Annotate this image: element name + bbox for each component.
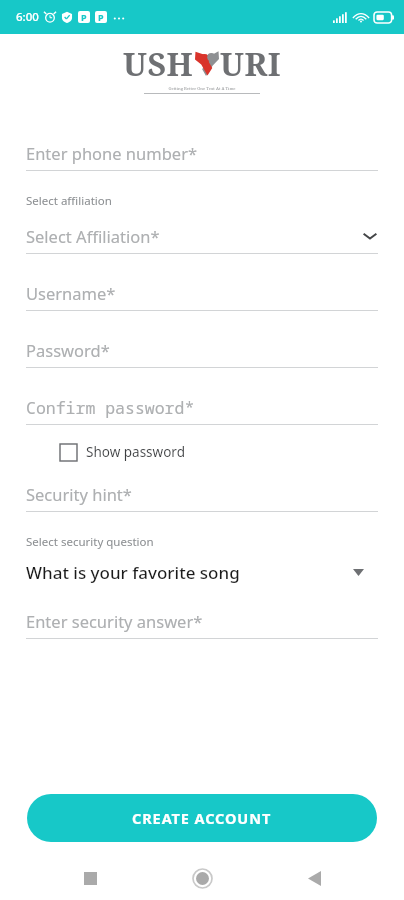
staticText: CREATE ACCOUNT — [132, 808, 272, 828]
button[interactable]: Recents — [68, 856, 112, 900]
button[interactable]: Enter phone number* — [0, 136, 404, 171]
button[interactable]: Home — [180, 856, 224, 900]
button[interactable]: Username* — [0, 276, 404, 311]
staticText: USH — [123, 42, 194, 82]
staticText: URI — [220, 42, 282, 82]
staticText: Select Affiliation* — [26, 225, 160, 247]
button[interactable]: Show password — [58, 437, 187, 467]
staticText: 6:00 — [16, 9, 39, 25]
button[interactable]: Enter security answer* — [0, 604, 404, 639]
button[interactable]: Select Affiliation* — [0, 219, 404, 254]
staticText: Enter security answer* — [26, 610, 203, 632]
other: Select affiliation dropdown — [362, 231, 378, 241]
staticText: Show password — [86, 443, 185, 461]
other: Select security question dropdown — [353, 569, 364, 576]
staticText: Security hint* — [26, 483, 132, 505]
staticText: Select security question — [26, 534, 154, 550]
button[interactable]: Back — [292, 856, 336, 900]
staticText: Enter phone number* — [26, 142, 198, 164]
staticText: Select affiliation — [26, 193, 112, 209]
staticText: Username* — [26, 282, 116, 304]
button[interactable]: What is your favorite song — [0, 554, 404, 590]
staticText: P — [81, 11, 87, 23]
button[interactable]: Password* — [0, 333, 404, 368]
button[interactable]: Security hint* — [0, 477, 404, 512]
staticText: Getting Better One Text At A Time — [168, 86, 236, 92]
staticText: Password* — [26, 339, 110, 361]
button[interactable]: CREATE ACCOUNT — [27, 794, 377, 842]
staticText: What is your favorite song — [26, 561, 240, 584]
staticText: P — [98, 11, 104, 23]
staticText: Confirm password* — [26, 396, 195, 418]
button[interactable]: Confirm password* — [0, 390, 404, 425]
